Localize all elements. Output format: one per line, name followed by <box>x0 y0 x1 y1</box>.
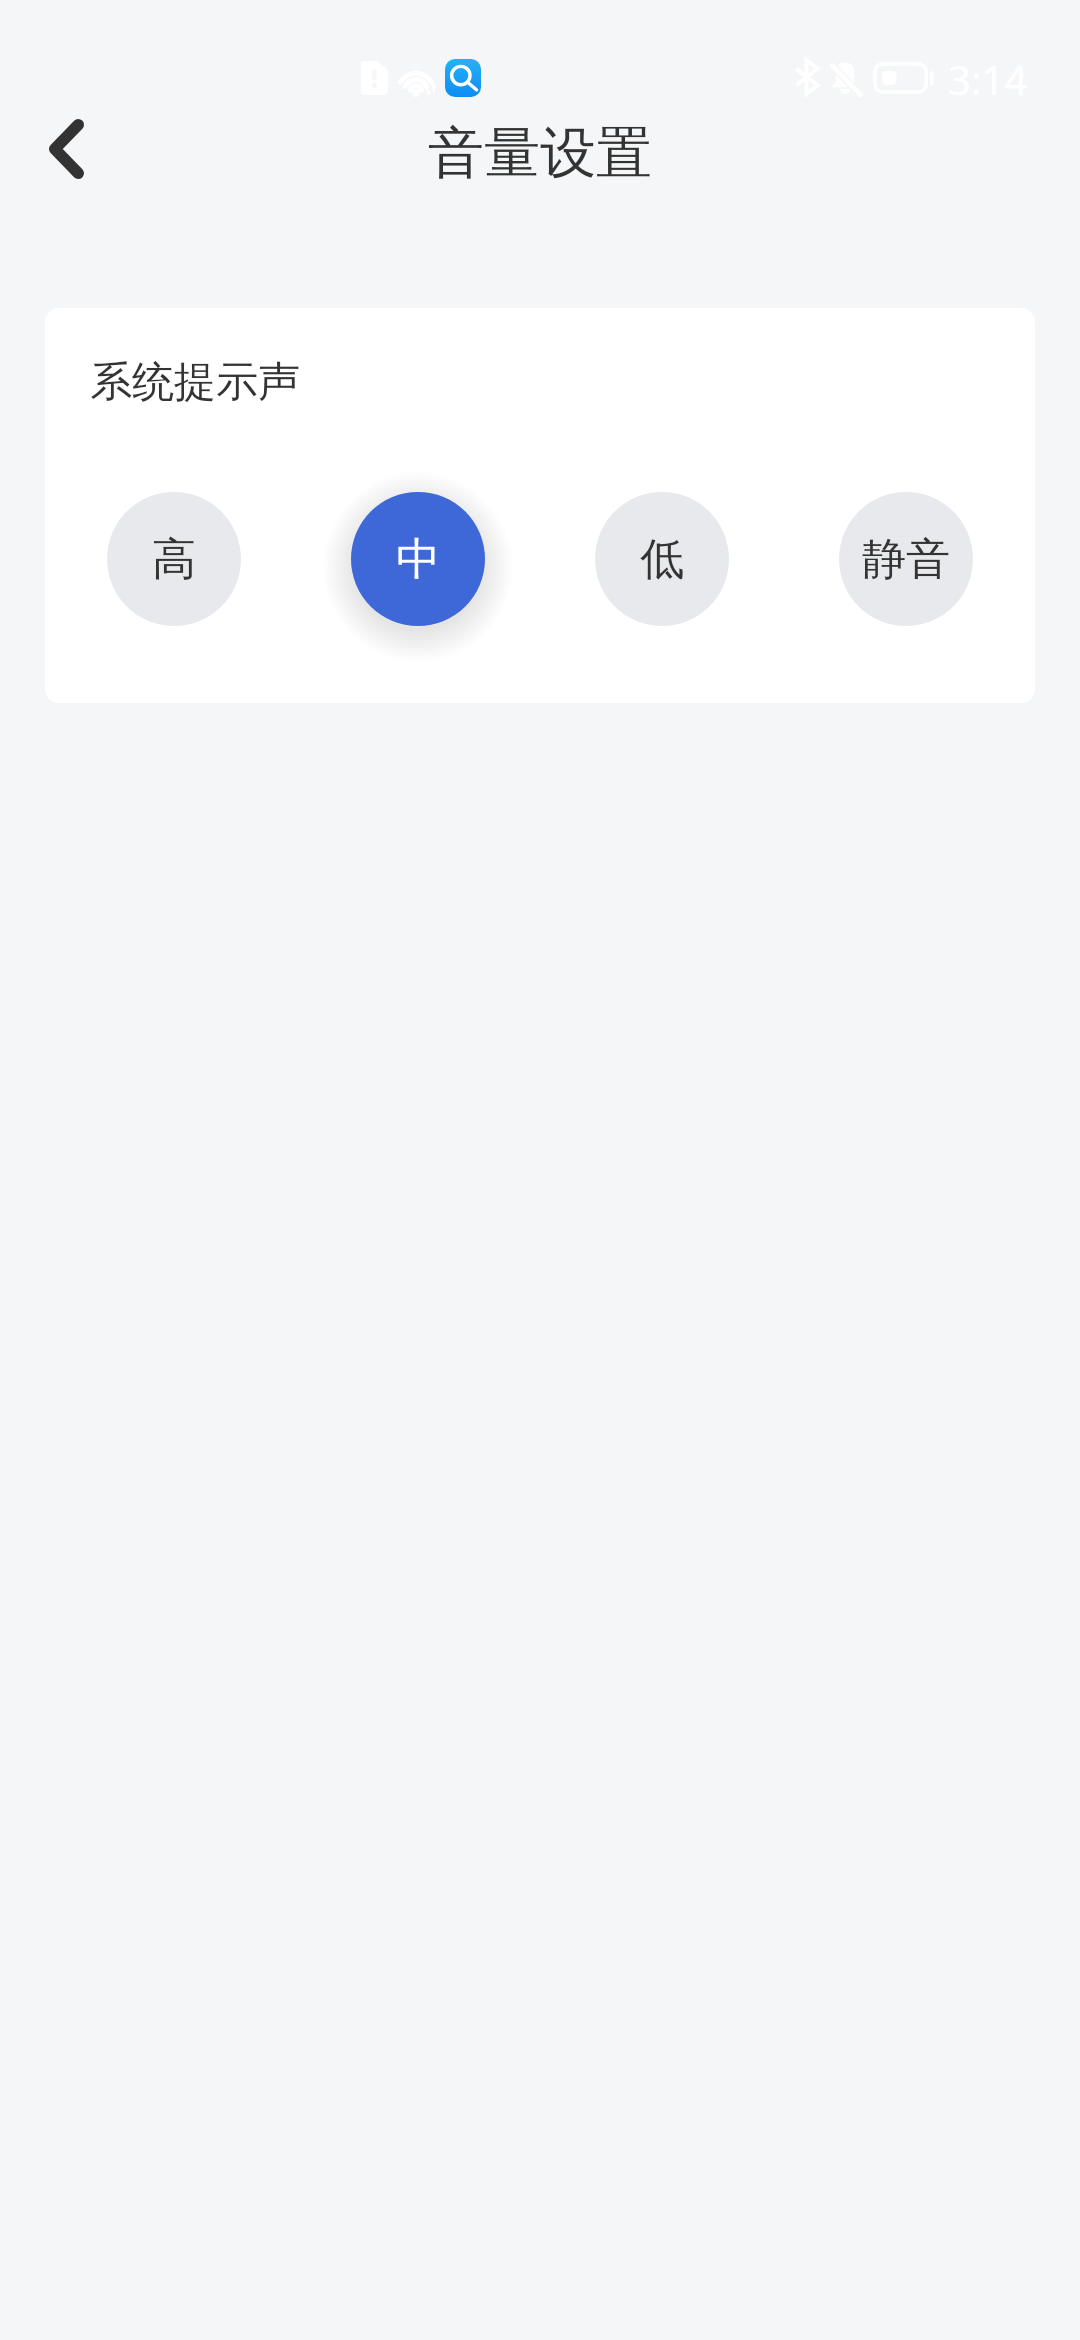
button[interactable]: 低 <box>595 492 729 626</box>
staticText: 高 <box>152 532 196 587</box>
button[interactable]: 高 <box>107 492 241 626</box>
staticText: 音量设置 <box>428 118 652 189</box>
button[interactable]: Back <box>22 106 110 194</box>
staticText: 静音 <box>862 532 950 587</box>
staticText: 低 <box>640 532 684 587</box>
button[interactable]: 中 <box>351 492 485 626</box>
staticText: 中 <box>396 532 440 587</box>
button[interactable]: Search <box>445 59 481 97</box>
staticText: 3:14 <box>948 52 1028 106</box>
button[interactable]: 静音 <box>839 492 973 626</box>
staticText: 系统提示声 <box>90 356 300 409</box>
